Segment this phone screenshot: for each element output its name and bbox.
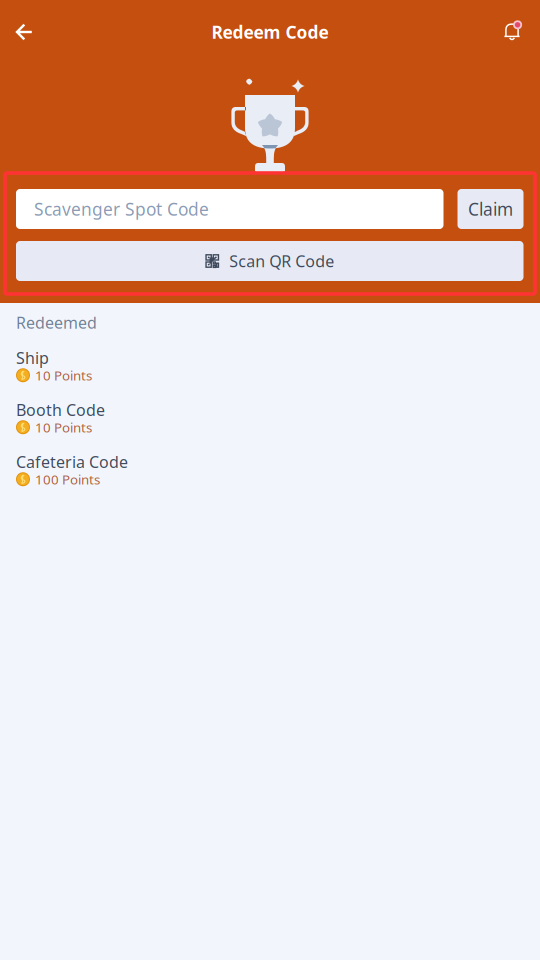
button[interactable]: Booth Code (0, 392, 540, 444)
staticText: Scavenger Spot Code (34, 197, 209, 220)
button[interactable]: Back (0, 8, 48, 56)
staticText: Cafeteria Code (16, 451, 128, 472)
staticText: 100 Points (35, 470, 100, 488)
button[interactable]: Cafeteria Code (0, 444, 540, 496)
button[interactable]: Notifications (488, 8, 536, 56)
staticText: Scan QR Code (229, 250, 334, 272)
staticText: Claim (468, 197, 513, 220)
staticText: 10 Points (35, 418, 92, 436)
staticText: Redeem Code (211, 20, 328, 43)
button[interactable]: Scan QR Code (16, 241, 523, 281)
staticText: Booth Code (16, 399, 105, 420)
staticText: Ship (16, 347, 49, 368)
button[interactable]: Ship (0, 340, 540, 392)
staticText: Redeemed (16, 312, 97, 333)
staticText: 10 Points (35, 366, 92, 384)
button[interactable]: Claim (457, 189, 523, 229)
